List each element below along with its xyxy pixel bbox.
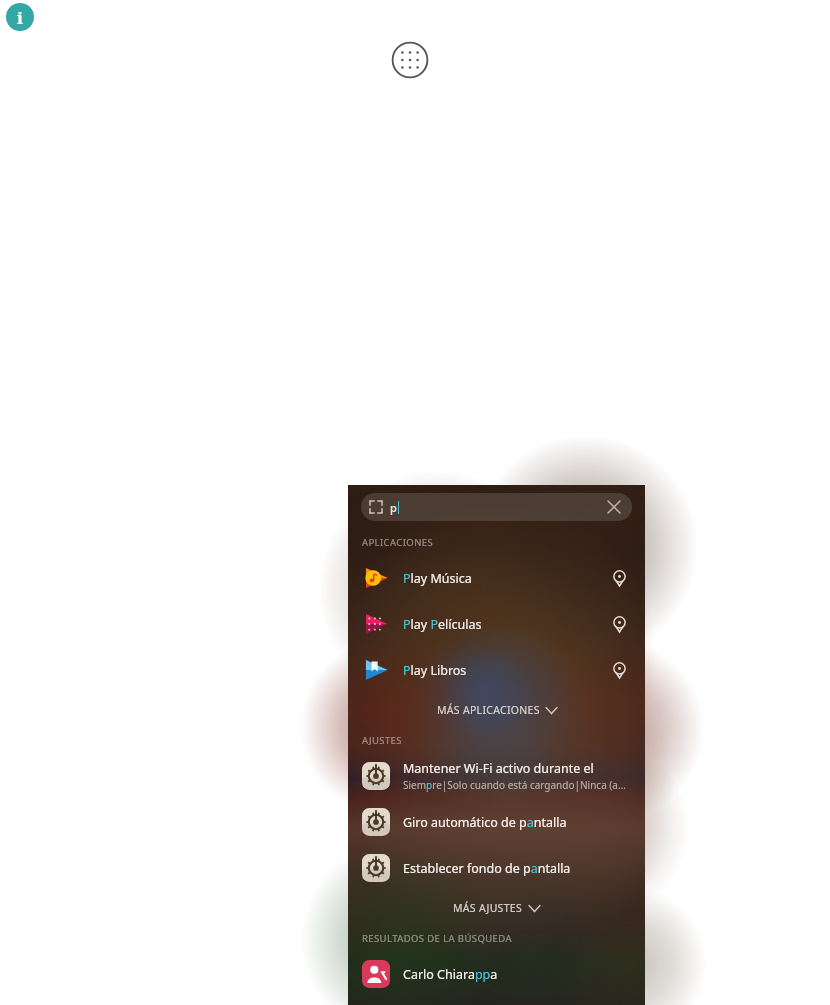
button[interactable]: Information (6, 3, 34, 31)
staticText: Siempre|Solo cuando está cargando|Ninca … (403, 778, 626, 792)
button[interactable]: Establecer fondo de pantalla (348, 845, 645, 891)
button[interactable]: Giro automático de pantalla (348, 799, 645, 845)
button[interactable]: Clear search (604, 497, 624, 517)
button[interactable]: p (361, 493, 632, 521)
staticText: MÁS AJUSTES (453, 901, 523, 915)
button[interactable]: Play Música (348, 555, 645, 601)
staticText: p (390, 500, 397, 515)
staticText: Giro automático de pantalla (403, 814, 567, 831)
button[interactable]: Open location (606, 565, 632, 591)
button[interactable]: Mantener Wi-Fi activo durante el periodo… (348, 753, 645, 799)
staticText: Mantener Wi-Fi activo durante el periodo… (403, 760, 635, 777)
staticText: AJUSTES (362, 734, 402, 747)
staticText: RESULTADOS DE LA BÚSQUEDA (362, 932, 512, 945)
button[interactable]: All apps (391, 41, 429, 79)
staticText: Play Música (403, 570, 472, 587)
staticText: i (17, 6, 23, 29)
staticText: MÁS APLICACIONES (437, 703, 540, 717)
staticText: APLICACIONES (362, 536, 434, 549)
button[interactable]: MÁS AJUSTES (348, 891, 645, 925)
button[interactable]: Open location (606, 657, 632, 683)
staticText: Play Películas (403, 616, 482, 633)
button[interactable]: Play Libros (348, 647, 645, 693)
button[interactable]: Carlo Chiarappa (348, 951, 645, 997)
button[interactable]: Open location (606, 611, 632, 637)
staticText: Play Libros (403, 662, 467, 679)
button[interactable]: Play Películas (348, 601, 645, 647)
button[interactable]: MÁS APLICACIONES (348, 693, 645, 727)
staticText: Carlo Chiarappa (403, 966, 498, 983)
staticText: Establecer fondo de pantalla (403, 860, 571, 877)
